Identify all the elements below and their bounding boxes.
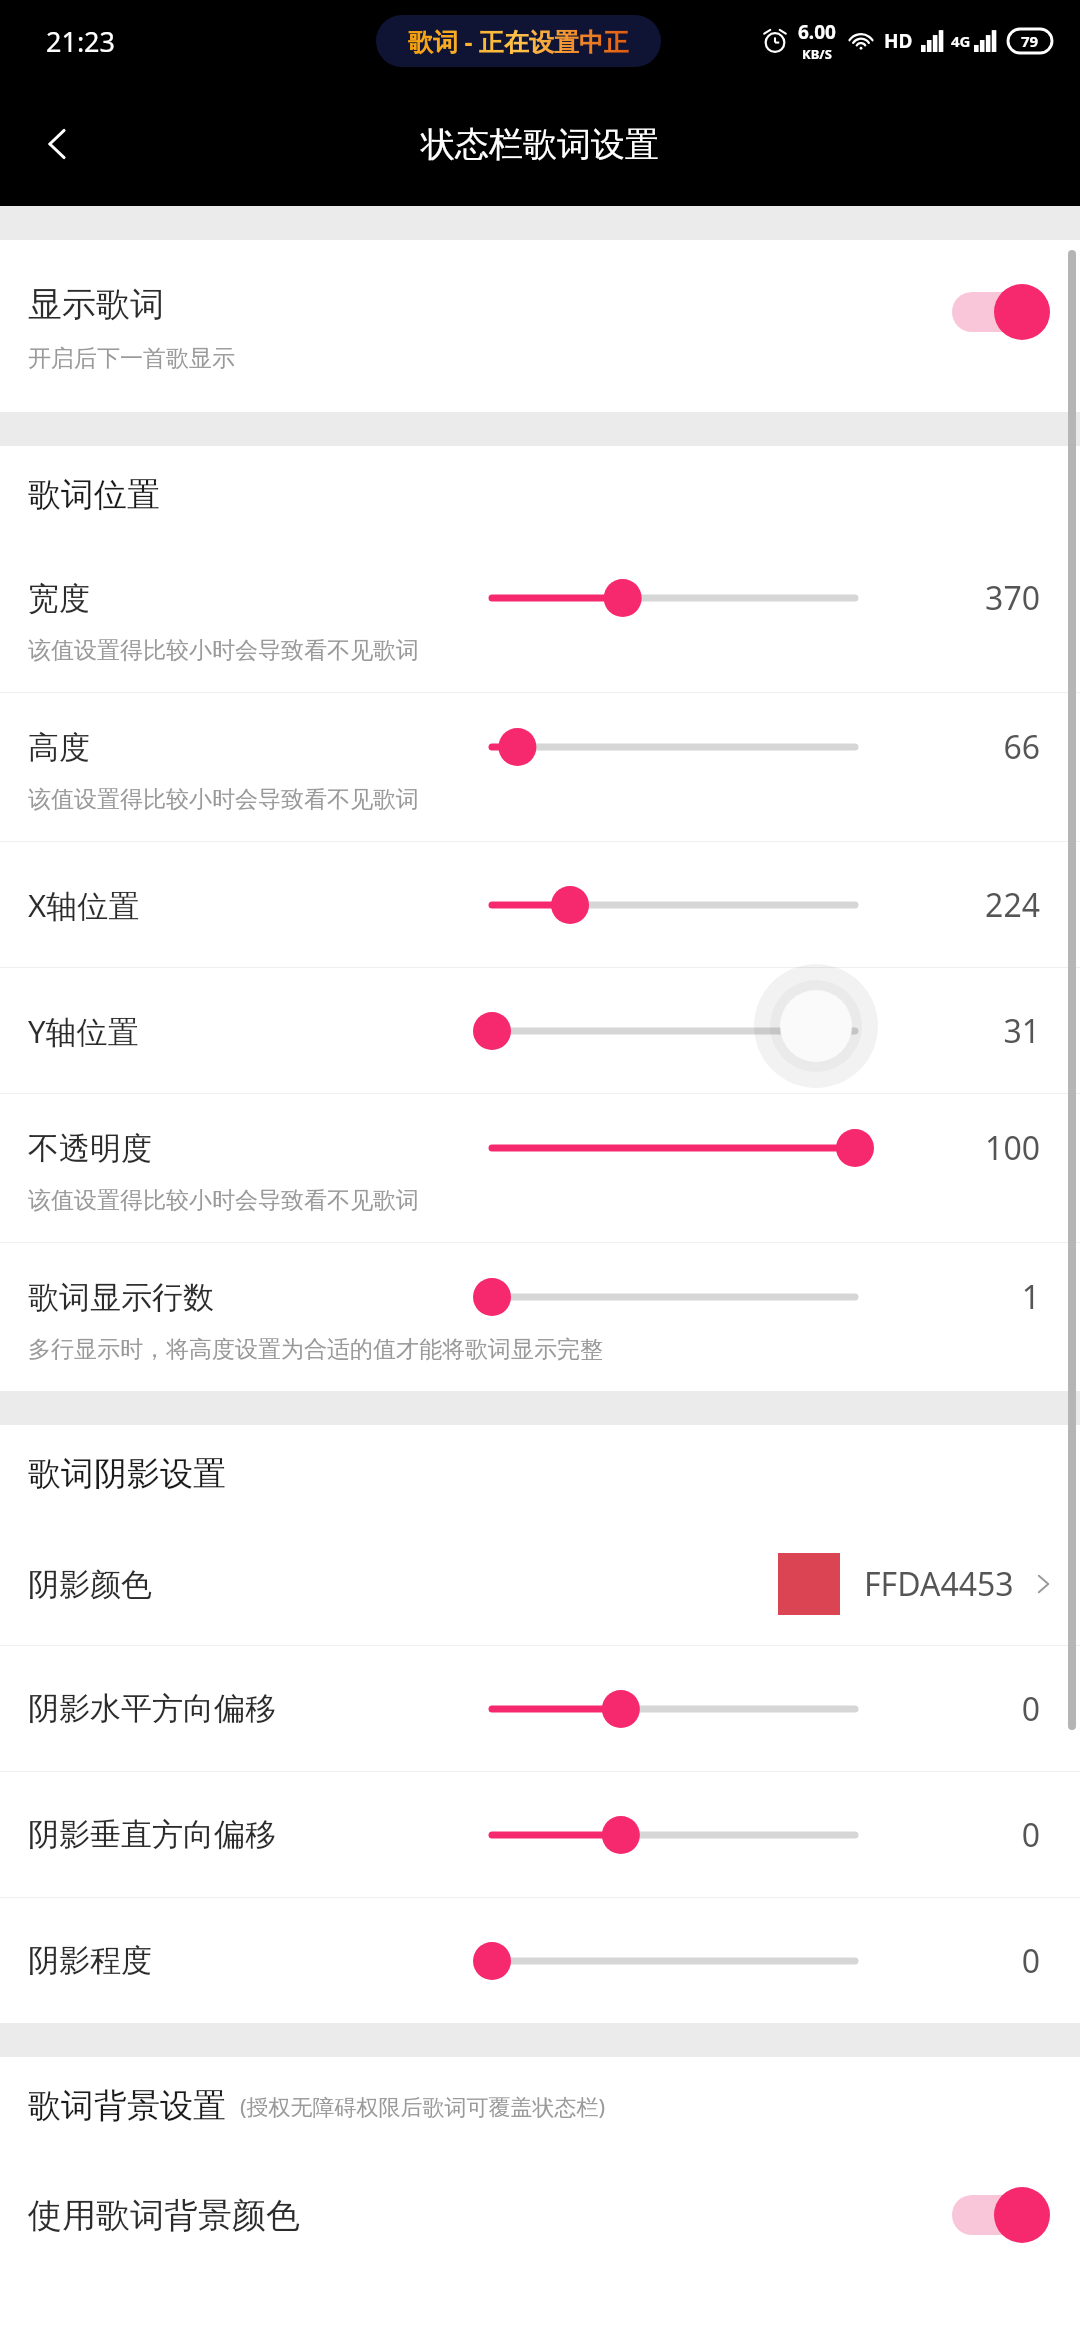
staticText: 6.00: [798, 19, 836, 45]
staticText: 歌词 - 正在设置中正: [408, 24, 630, 58]
staticText: 歌词显示行数: [28, 1278, 214, 1317]
staticText: Y轴位置: [28, 1010, 139, 1052]
button[interactable]: Back: [22, 108, 94, 180]
staticText: 0: [1021, 1939, 1040, 1983]
staticText: 阴影颜色: [28, 1565, 152, 1604]
button[interactable]: 阴影垂直方向偏移: [0, 1772, 1080, 1897]
staticText: HD: [884, 28, 913, 54]
staticText: 0: [1021, 1687, 1040, 1731]
button[interactable]: 高度: [0, 693, 1080, 841]
staticText: 224: [985, 883, 1040, 927]
button[interactable]: Y轴位置: [0, 968, 1080, 1093]
staticText: 显示歌词: [28, 283, 164, 326]
button[interactable]: 宽度: [0, 544, 1080, 692]
staticText: 歌词背景设置: [28, 2085, 226, 2127]
staticText: (授权无障碍权限后歌词可覆盖状态栏): [240, 2091, 606, 2121]
staticText: 该值设置得比较小时会导致看不见歌词: [28, 785, 419, 814]
button[interactable]: Use lyrics background colour toggle: [944, 2184, 1052, 2246]
staticText: 高度: [28, 728, 90, 767]
staticText: 0: [1021, 1813, 1040, 1857]
staticText: 多行显示时，将高度设置为合适的值才能将歌词显示完整: [28, 1335, 603, 1364]
staticText: 370: [985, 576, 1040, 620]
staticText: 79: [1021, 31, 1039, 51]
staticText: 21:23: [46, 23, 116, 60]
staticText: 1: [1021, 1275, 1040, 1319]
staticText: 66: [1003, 725, 1040, 769]
staticText: 该值设置得比较小时会导致看不见歌词: [28, 1186, 419, 1215]
staticText: 100: [985, 1126, 1040, 1170]
button[interactable]: 阴影程度: [0, 1898, 1080, 2023]
staticText: FFDA4453: [864, 1562, 1014, 1606]
staticText: 使用歌词背景颜色: [28, 2194, 300, 2237]
staticText: 歌词位置: [28, 474, 160, 516]
staticText: 31: [1003, 1009, 1040, 1053]
staticText: 宽度: [28, 579, 90, 618]
button[interactable]: 阴影颜色: [0, 1523, 1080, 1645]
staticText: KB/S: [802, 45, 832, 63]
button[interactable]: 使用歌词背景颜色: [0, 2155, 1080, 2275]
button[interactable]: 阴影水平方向偏移: [0, 1646, 1080, 1771]
staticText: 阴影水平方向偏移: [28, 1689, 276, 1728]
staticText: 阴影垂直方向偏移: [28, 1815, 276, 1854]
button[interactable]: 不透明度: [0, 1094, 1080, 1242]
button[interactable]: X轴位置: [0, 842, 1080, 967]
button[interactable]: 显示歌词: [0, 240, 1080, 412]
staticText: X轴位置: [28, 884, 140, 926]
button[interactable]: Show lyrics toggle: [944, 281, 1052, 343]
staticText: 该值设置得比较小时会导致看不见歌词: [28, 636, 419, 665]
button[interactable]: 歌词显示行数: [0, 1243, 1080, 1391]
staticText: 4G: [951, 31, 971, 51]
staticText: 不透明度: [28, 1129, 152, 1168]
staticText: 开启后下一首歌显示: [28, 344, 235, 373]
staticText: 状态栏歌词设置: [421, 123, 659, 166]
staticText: 阴影程度: [28, 1941, 152, 1980]
staticText: 歌词阴影设置: [28, 1453, 226, 1495]
